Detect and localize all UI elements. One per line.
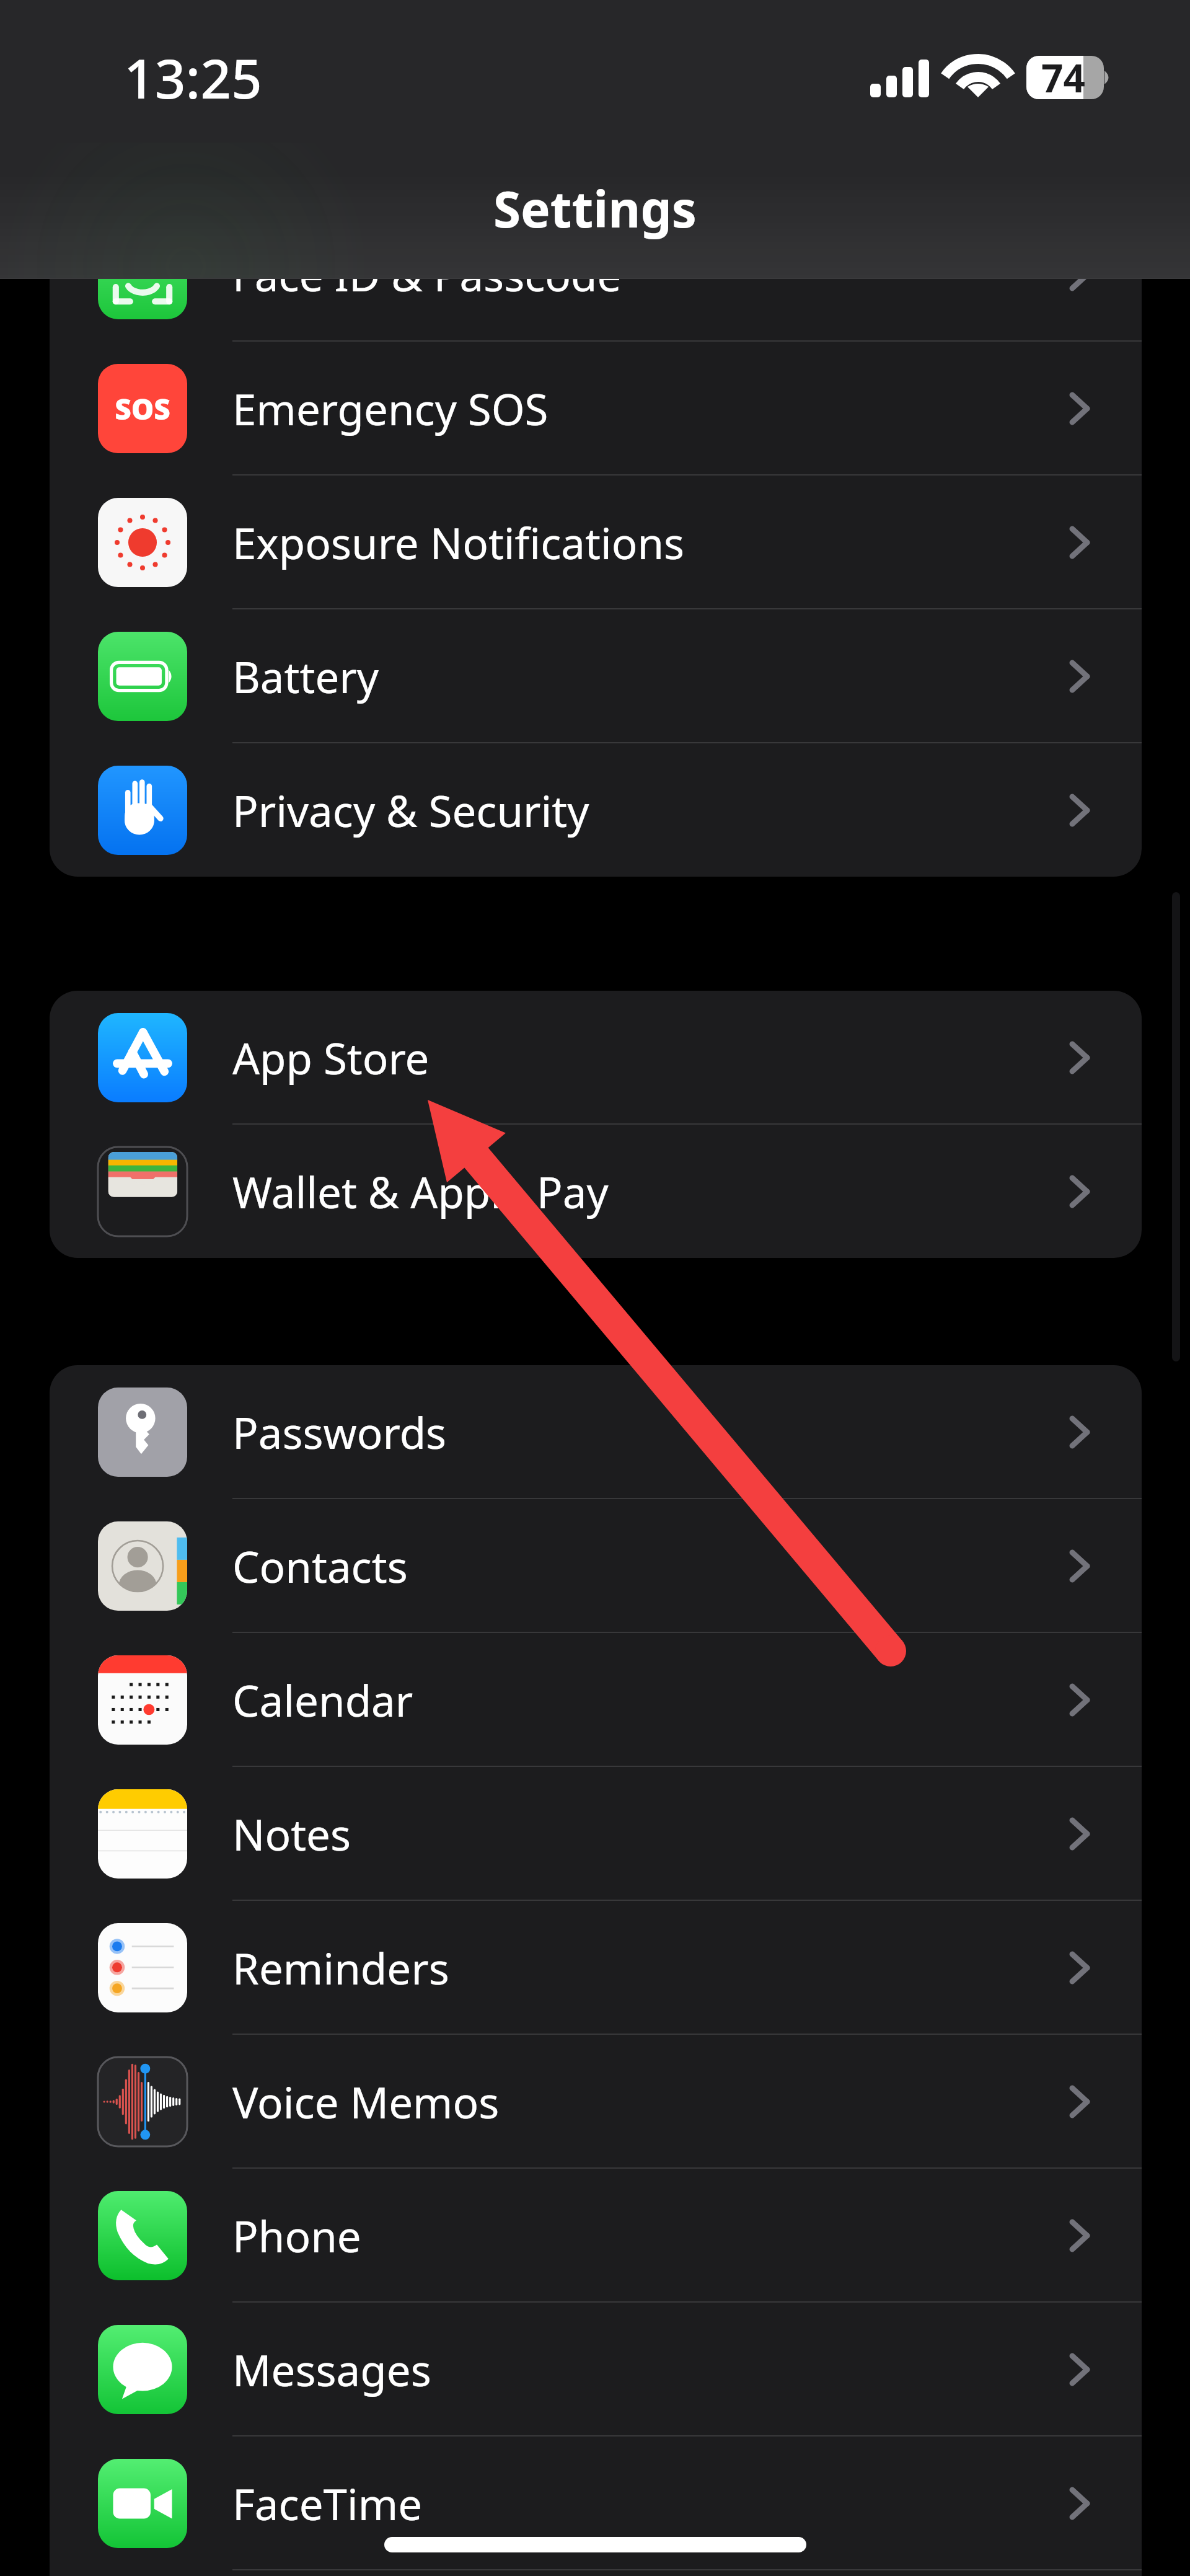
staticText: App Store <box>232 1029 430 1087</box>
staticText: Voice Memos <box>232 2073 500 2131</box>
button[interactable]: Notes <box>50 1767 1142 1901</box>
staticText: Messages <box>232 2340 431 2399</box>
button[interactable]: FaceTime <box>50 2437 1142 2570</box>
button[interactable]: Messages <box>50 2303 1142 2437</box>
staticText: Notes <box>232 1805 351 1863</box>
staticText: Passwords <box>232 1403 447 1461</box>
staticText: Phone <box>232 2206 361 2265</box>
button[interactable]: Contacts <box>50 1499 1142 1633</box>
staticText: Face ID & Passcode <box>232 246 622 304</box>
button[interactable]: Wallet & Apple Pay <box>50 1125 1142 1258</box>
button[interactable]: App Store <box>50 991 1142 1125</box>
button[interactable]: Voice Memos <box>50 2035 1142 2169</box>
button[interactable]: Exposure Notifications <box>50 476 1142 609</box>
staticText: Settings <box>493 174 697 242</box>
staticText: Reminders <box>232 1939 449 1997</box>
staticText: 13:25 <box>124 41 262 114</box>
button[interactable]: Safari <box>50 2570 1142 2576</box>
staticText: FaceTime <box>232 2474 423 2533</box>
button[interactable]: Phone <box>50 2169 1142 2303</box>
staticText: Calendar <box>232 1671 413 1729</box>
button[interactable]: Passwords <box>50 1365 1142 1499</box>
button[interactable]: Privacy & Security <box>50 743 1142 877</box>
button[interactable]: Face ID & Passcode <box>50 208 1142 342</box>
button[interactable]: Reminders <box>50 1901 1142 2035</box>
staticText: Emergency SOS <box>232 379 549 438</box>
staticText: Wallet & Apple Pay <box>232 1162 609 1221</box>
staticText: Privacy & Security <box>232 781 589 839</box>
staticText: Contacts <box>232 1537 408 1595</box>
staticText: Exposure Notifications <box>232 513 685 572</box>
button[interactable]: Calendar <box>50 1633 1142 1767</box>
staticText: SOS <box>115 389 170 428</box>
staticText: Battery <box>232 647 379 706</box>
staticText: 74 <box>1041 51 1085 104</box>
button[interactable]: SOS <box>50 342 1142 476</box>
button[interactable]: Battery <box>50 609 1142 743</box>
